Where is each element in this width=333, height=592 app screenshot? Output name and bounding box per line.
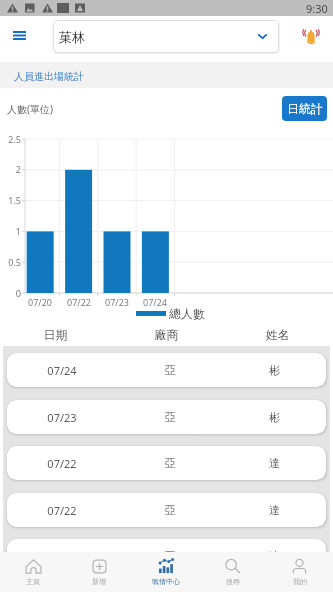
staticText: 2.5 [0, 133, 21, 145]
staticText: 總人數 [169, 306, 205, 321]
button[interactable]: 日統計 [282, 96, 327, 121]
staticText: 日統計 [287, 101, 323, 116]
button[interactable]: Notifications [279, 16, 333, 62]
staticText: 彬 [223, 363, 326, 377]
staticText: 我的 [293, 577, 307, 586]
staticText: 人員進出場統計 [14, 70, 84, 83]
staticText: 0.5 [0, 256, 21, 268]
staticText: 人數(單位) [7, 102, 53, 116]
staticText: 亞 [117, 503, 223, 517]
staticText: 達 [223, 549, 326, 563]
button[interactable]: 07/22 [7, 446, 326, 480]
staticText: 姓名 [222, 327, 333, 342]
button[interactable]: 07/22 [7, 493, 326, 527]
staticText: 07/23 [98, 296, 136, 308]
staticText: 0 [0, 287, 21, 299]
staticText: 07/24 [136, 296, 174, 308]
staticText: 廠商 [111, 327, 222, 342]
button[interactable]: 07/24 [7, 353, 326, 387]
staticText: 9:30 [306, 1, 328, 16]
button[interactable]: 07/23 [7, 400, 326, 434]
staticText: 1 [0, 225, 21, 237]
staticText: 07/22 [7, 503, 117, 518]
staticText: 1.5 [0, 194, 21, 206]
staticText: 07/20 [21, 296, 59, 308]
button[interactable]: 搜尋 [199, 552, 266, 592]
staticText: 達 [223, 503, 326, 517]
staticText: 07/22 [7, 456, 117, 471]
staticText: 07/22 [60, 296, 98, 308]
staticText: 彬 [223, 410, 326, 424]
staticText: 07/21 [7, 549, 117, 564]
staticText: 達 [223, 456, 326, 470]
button[interactable]: 07/21 [7, 539, 326, 573]
button[interactable]: 戰情中心 [132, 552, 199, 592]
staticText: 搜尋 [226, 577, 240, 586]
staticText: 日期 [0, 327, 111, 342]
staticText: 戰情中心 [152, 577, 180, 586]
button[interactable]: 新增 [66, 552, 132, 592]
button[interactable]: 我的 [266, 552, 333, 592]
staticText: 亞 [117, 363, 223, 377]
staticText: 亞 [117, 456, 223, 470]
button[interactable]: 菓林 [53, 20, 279, 53]
button[interactable]: Menu [0, 16, 53, 62]
staticText: 07/24 [7, 363, 117, 378]
staticText: 07/23 [7, 410, 117, 425]
staticText: 亞 [117, 549, 223, 563]
staticText: 主頁 [26, 577, 40, 586]
staticText: 菓林 [59, 29, 85, 45]
staticText: 亞 [117, 410, 223, 424]
staticText: 2 [0, 163, 21, 175]
staticText: 新增 [92, 577, 106, 586]
button[interactable]: 主頁 [0, 552, 66, 592]
